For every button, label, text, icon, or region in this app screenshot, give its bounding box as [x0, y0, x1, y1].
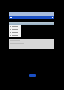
button[interactable]	[9, 22, 54, 25]
button[interactable]: Navigate up	[9, 16, 54, 19]
button[interactable]: Open	[29, 74, 36, 77]
button[interactable]	[9, 32, 21, 33]
button[interactable]	[9, 26, 21, 27]
button[interactable]	[9, 29, 21, 30]
button[interactable]	[9, 35, 21, 36]
